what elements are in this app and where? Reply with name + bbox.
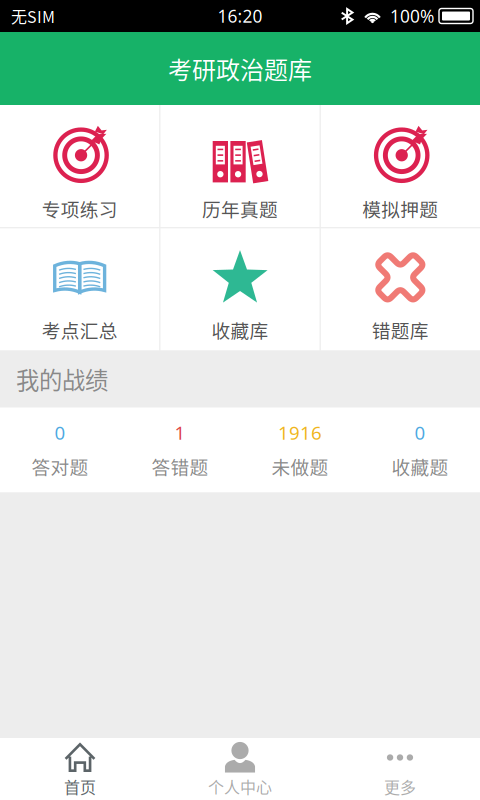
button[interactable]: 收藏库: [160, 228, 320, 350]
staticText: 专项练习: [42, 195, 118, 222]
staticText: 个人中心: [208, 775, 272, 798]
button[interactable]: 专项练习: [0, 105, 159, 227]
button[interactable]: 更多: [320, 738, 480, 800]
staticText: 首页: [64, 775, 96, 798]
staticText: 收藏库: [211, 316, 268, 343]
staticText: 历年真题: [202, 195, 278, 222]
staticText: 答对题: [31, 453, 88, 480]
staticText: 100%: [390, 4, 434, 27]
button[interactable]: 错题库: [321, 228, 480, 350]
staticText: 模拟押题: [362, 195, 438, 222]
staticText: 答错题: [151, 453, 208, 480]
button[interactable]: 考点汇总: [0, 228, 159, 350]
button[interactable]: 历年真题: [160, 105, 320, 227]
staticText: 错题库: [372, 316, 429, 343]
staticText: 考研政治题库: [168, 51, 312, 86]
button[interactable]: 模拟押题: [321, 105, 480, 227]
staticText: 考点汇总: [42, 316, 118, 343]
staticText: 更多: [384, 775, 416, 798]
staticText: 未做题: [271, 453, 328, 480]
button[interactable]: 首页: [0, 738, 160, 800]
staticText: 0: [54, 420, 65, 445]
button[interactable]: 个人中心: [160, 738, 320, 800]
staticText: 1916: [278, 420, 322, 445]
staticText: 收藏题: [391, 453, 448, 480]
staticText: 0: [414, 420, 425, 445]
staticText: 1: [174, 420, 185, 445]
staticText: 16:20: [217, 4, 262, 27]
staticText: 我的战绩: [16, 362, 108, 396]
staticText: 无SIM: [11, 4, 55, 28]
